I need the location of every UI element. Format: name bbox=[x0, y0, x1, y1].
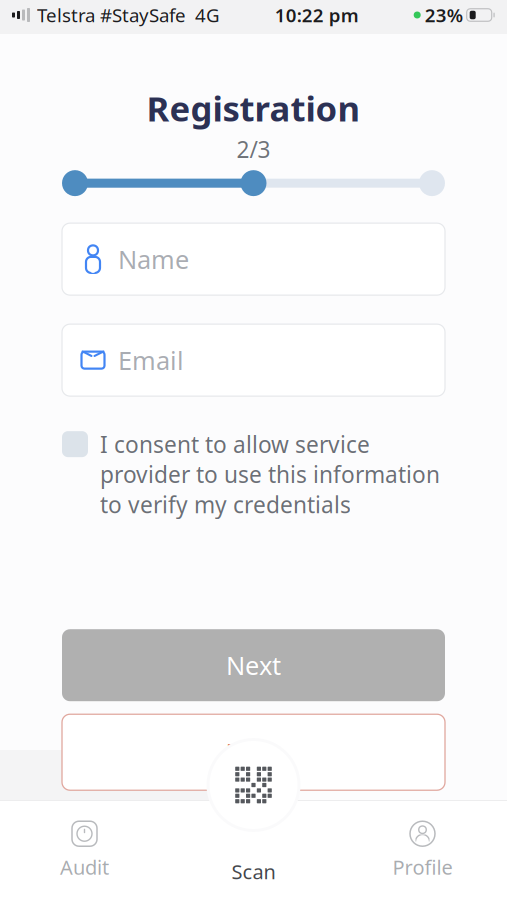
staticText: Telstra #StaySafe bbox=[37, 3, 186, 27]
staticText: Registration bbox=[146, 85, 360, 131]
staticText: Profile bbox=[392, 854, 452, 880]
button[interactable]: Next bbox=[62, 629, 445, 701]
staticText: 2/3 bbox=[236, 134, 270, 164]
staticText: Next bbox=[226, 648, 281, 682]
button[interactable]: Profile bbox=[338, 800, 507, 900]
button[interactable]: Scan bbox=[169, 800, 338, 900]
button[interactable]: I consent to allow service provider to u… bbox=[62, 429, 445, 519]
button[interactable]: Audit bbox=[0, 800, 169, 900]
staticText: Name bbox=[118, 242, 189, 276]
staticText: 4G bbox=[195, 3, 220, 27]
staticText: 23% bbox=[425, 3, 463, 27]
button[interactable]: Back bbox=[62, 714, 445, 790]
button[interactable]: Scan bbox=[206, 738, 300, 832]
staticText: Email bbox=[118, 343, 184, 377]
button[interactable]: Name bbox=[62, 223, 445, 295]
staticText: Audit bbox=[60, 854, 109, 880]
staticText: Back bbox=[225, 735, 281, 769]
button[interactable]: Email bbox=[62, 324, 445, 396]
staticText: I consent to allow service provider to u… bbox=[100, 429, 440, 519]
staticText: 10:22 pm bbox=[275, 3, 359, 27]
staticText: Scan bbox=[231, 858, 275, 885]
